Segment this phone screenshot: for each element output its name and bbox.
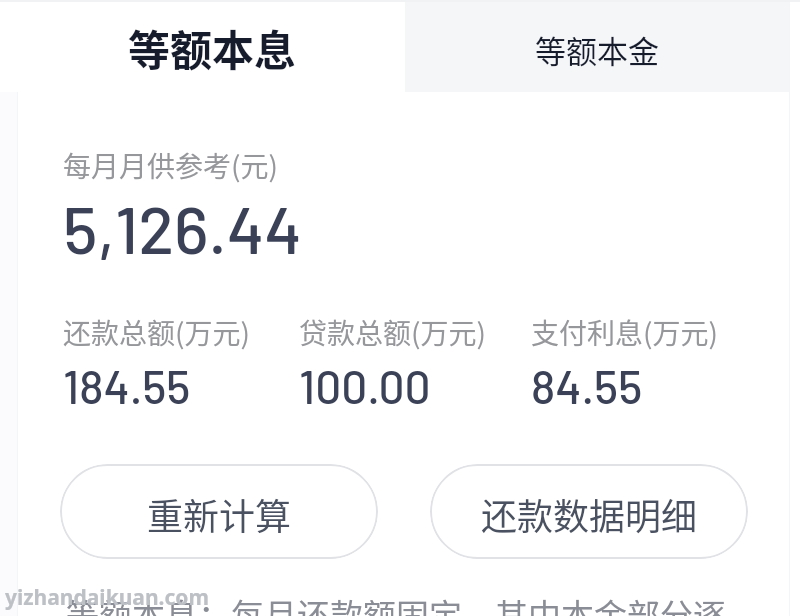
button[interactable]: 还款数据明细 [430, 464, 748, 559]
staticText: yizhandaikuan.com [5, 583, 209, 612]
staticText: 84.55 [531, 358, 643, 413]
staticText: 还款总额(万元) [63, 312, 250, 353]
staticText: 贷款总额(万元) [299, 312, 486, 353]
staticText: 等额本息：每月还款额固定，其中本金部分逐 [66, 590, 726, 616]
staticText: 重新计算 [147, 488, 292, 540]
staticText: 5,126.44 [63, 188, 302, 267]
button[interactable]: 重新计算 [60, 464, 378, 559]
staticText: 等额本息 [128, 17, 297, 78]
staticText: 每月月供参考(元) [63, 145, 278, 186]
button[interactable]: 等额本金 [405, 0, 789, 92]
staticText: 184.55 [63, 358, 191, 413]
button[interactable]: 等额本息 [0, 0, 405, 92]
staticText: 还款数据明细 [481, 488, 698, 540]
staticText: 等额本金 [535, 27, 659, 72]
staticText: 100.00 [299, 358, 431, 413]
staticText: 支付利息(万元) [531, 312, 718, 353]
